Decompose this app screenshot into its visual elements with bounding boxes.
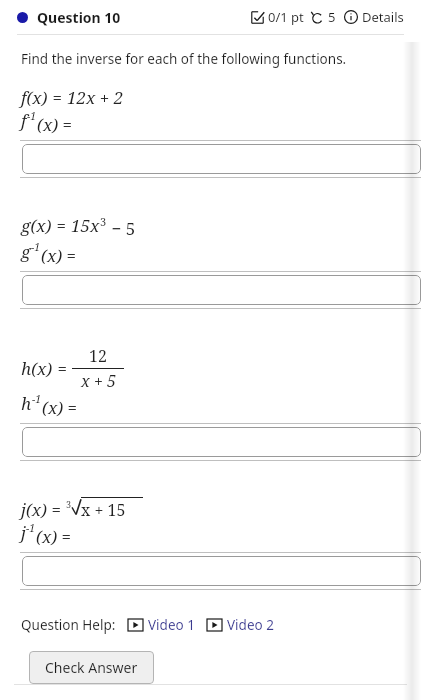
staticText: − 5 [107,217,136,240]
staticText: -1 [26,521,36,535]
staticText: Check Answer [45,658,138,677]
staticText: Video 1 [148,616,195,634]
staticText: Details [362,8,404,26]
staticText: 5 [328,8,336,26]
staticText: Video 2 [227,616,274,634]
button[interactable]: Check Answer [29,651,154,684]
staticText: x + 5 [81,370,116,392]
button[interactable]: Video 2 [207,616,274,634]
button[interactable] [22,144,421,174]
button[interactable] [22,556,421,586]
button[interactable] [22,427,421,457]
button[interactable]: Details [344,8,404,26]
staticText: Find the inverse for each of the followi… [21,50,347,68]
staticText: h [21,392,32,415]
staticText: 12x + 2 [67,86,124,109]
staticText: f [21,109,27,132]
staticText: Question Help: [21,616,116,634]
staticText: j [21,521,26,544]
staticText: g(x) [21,214,52,237]
staticText: = [53,357,72,380]
staticText: j(x) [21,498,47,521]
staticText: 15x [71,214,100,237]
button[interactable]: Video 1 [128,616,195,634]
staticText: (x) = [41,244,76,267]
staticText: 12 [89,345,107,367]
staticText: x + 15 [81,499,126,521]
staticText: (x) = [36,525,71,548]
staticText: Question 10 [37,8,121,27]
staticText: g [21,240,31,263]
staticText: (x) = [42,396,77,419]
staticText: h(x) [21,357,53,380]
staticText: (x) = [37,113,72,136]
button[interactable] [22,275,421,305]
staticText: f(x) [21,86,48,109]
staticText: -1 [32,392,42,406]
staticText: -1 [27,109,37,123]
staticText: 0/1 pt [268,8,304,26]
staticText: = [47,498,66,521]
staticText: -1 [31,240,41,254]
staticText: = [48,86,67,109]
staticText: = [52,214,71,237]
staticText: 3 [66,498,72,510]
staticText: 3 [100,214,107,229]
